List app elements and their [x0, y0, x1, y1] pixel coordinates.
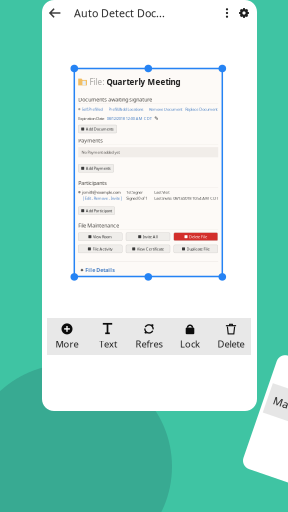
staticText: Add Documents — [86, 126, 114, 132]
staticText: Duplicate File — [187, 246, 210, 251]
staticText: Documents awaiting signature — [78, 96, 152, 103]
staticText: Last Visit — [154, 189, 169, 195]
staticText: [ Edit - Remove - Invite ] — [83, 195, 122, 201]
button[interactable]: View Certificate — [126, 245, 170, 253]
staticText: File: — [89, 76, 104, 87]
button[interactable]: Refres — [130, 318, 168, 354]
staticText: Replace Document — [185, 106, 217, 112]
staticText: Text — [99, 338, 117, 350]
staticText: Refres — [135, 338, 162, 350]
staticText: Signed 0 of 1 — [126, 195, 147, 201]
staticText: Auto Detect Doc... — [74, 6, 165, 20]
staticText: Delete — [217, 338, 244, 350]
staticText: Invite All — [143, 234, 158, 239]
staticText: File Activity — [92, 246, 112, 251]
button[interactable]: More — [48, 318, 86, 354]
button[interactable]: Lock — [171, 318, 209, 354]
staticText: Self-Prefilled — [82, 106, 103, 112]
button[interactable]: Back — [43, 0, 67, 26]
button[interactable]: Text — [89, 318, 127, 354]
button[interactable]: Delete File — [174, 233, 218, 241]
staticText: 08/12/2018 12:00 AM CDT — [107, 116, 152, 121]
staticText: Main Menu — [267, 401, 288, 416]
staticText: File Details — [85, 266, 115, 274]
staticText: Delete File — [189, 234, 207, 239]
button[interactable]: More options — [219, 0, 234, 26]
staticText: No Payment added yet. — [81, 149, 120, 155]
button[interactable]: Add Documents — [78, 125, 117, 133]
staticText: More — [55, 338, 78, 350]
staticText: Expiration Date — [78, 116, 104, 121]
button[interactable]: Settings — [235, 0, 253, 26]
staticText: Participants — [78, 179, 107, 187]
staticText: Prefill/Add Locations — [109, 106, 144, 112]
staticText: Add Participant — [86, 208, 112, 213]
staticText: Last Invite: 08/13/2018 10:54 AM CDT — [154, 195, 218, 201]
staticText: Quarterly Meeting — [107, 76, 181, 87]
staticText: Add Payments — [86, 166, 111, 171]
staticText: View Certificate — [137, 246, 164, 251]
button[interactable]: View Room — [78, 233, 122, 241]
button[interactable]: File Activity — [78, 245, 122, 253]
button[interactable]: Add Payments — [78, 164, 114, 172]
staticText: Lock — [180, 338, 200, 350]
button[interactable]: Delete — [212, 318, 250, 354]
staticText: ✦ — [80, 267, 84, 273]
button[interactable]: Invite All — [126, 233, 170, 241]
staticText: Payments — [78, 137, 103, 144]
staticText: Remove Document — [149, 106, 182, 112]
staticText: 1st Signer — [126, 189, 143, 195]
staticText: ✎ — [154, 115, 158, 122]
button[interactable]: Duplicate File — [174, 245, 218, 253]
staticText: View Room — [93, 234, 112, 239]
staticText: jsmith@example.com — [82, 189, 121, 195]
staticText: File Maintenance — [78, 222, 119, 229]
button[interactable]: Add Participant — [78, 207, 115, 215]
